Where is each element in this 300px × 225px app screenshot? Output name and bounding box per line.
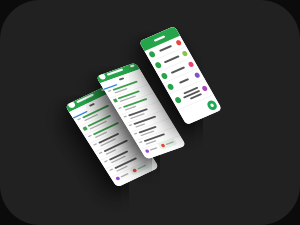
button[interactable]: New chat bbox=[175, 131, 186, 142]
